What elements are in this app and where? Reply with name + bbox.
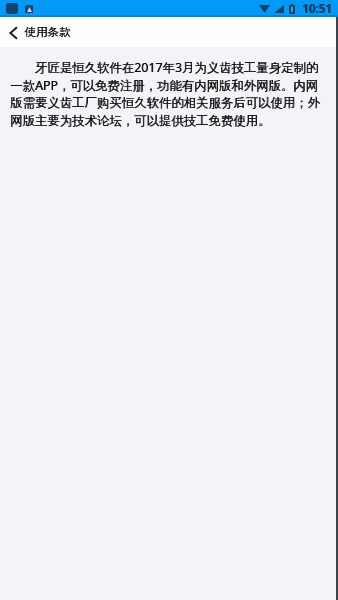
button[interactable]: Back (0, 21, 81, 44)
staticText: 10:51 (302, 1, 332, 17)
staticText: 网版主要为技术论坛，可以提供技工免费使用。 (10, 113, 271, 129)
staticText: 牙匠是恒久软件在2017年3月为义齿技工量身定制的 (10, 59, 319, 76)
staticText: 一款APP，可以免费注册，功能有内网版和外网版。内网 (10, 77, 318, 94)
staticText: 使用条款 (24, 25, 71, 40)
staticText: 版需要义齿工厂购买恒久软件的相关服务后可以使用；外 (10, 95, 320, 111)
